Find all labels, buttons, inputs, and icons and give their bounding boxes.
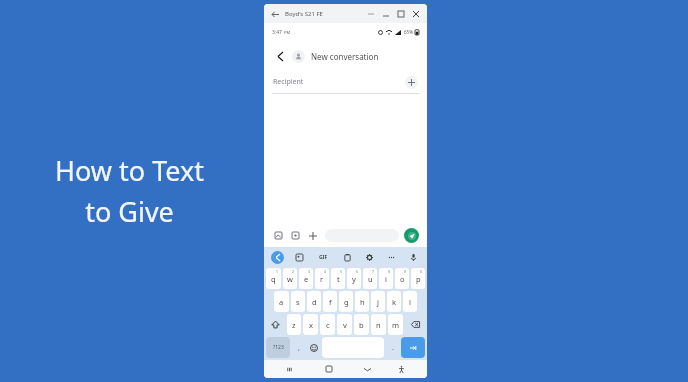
staticText: 3:47 <box>272 29 282 36</box>
button[interactable]: Back <box>272 48 288 64</box>
button[interactable]: Gallery <box>272 229 285 242</box>
button[interactable]: p <box>411 268 425 289</box>
button[interactable]: i <box>379 268 393 289</box>
button[interactable]: Sticker <box>293 251 306 264</box>
staticText: c <box>326 320 330 330</box>
button[interactable]: More options <box>385 251 398 264</box>
button[interactable]: . <box>386 337 399 358</box>
button[interactable]: t <box>331 268 345 289</box>
button[interactable]: Shift <box>266 314 285 335</box>
staticText: w <box>287 274 293 284</box>
staticText: 7 <box>372 269 375 274</box>
button[interactable]: j <box>371 291 385 312</box>
staticText: i <box>385 274 387 284</box>
button[interactable]: Recipient <box>273 71 418 93</box>
button[interactable]: f <box>323 291 337 312</box>
button[interactable]: r <box>315 268 329 289</box>
staticText: 4 <box>324 269 327 274</box>
button[interactable]: Home <box>317 360 340 378</box>
button[interactable]: More <box>365 8 377 20</box>
button[interactable]: e <box>299 268 313 289</box>
staticText: ?123 <box>273 344 284 351</box>
button[interactable]: Clipboard <box>341 251 354 264</box>
button[interactable]: , <box>292 337 305 358</box>
button[interactable]: u <box>363 268 377 289</box>
staticText: 65% <box>404 29 413 35</box>
button[interactable]: Recents <box>278 360 301 378</box>
staticText: l <box>409 297 411 307</box>
staticText: e <box>304 274 309 284</box>
button[interactable]: a <box>274 291 289 312</box>
button[interactable]: Settings <box>363 251 376 264</box>
button[interactable]: g <box>339 291 353 312</box>
staticText: n <box>376 320 381 330</box>
staticText: How to Text <box>55 152 204 189</box>
button[interactable]: Close <box>410 8 422 20</box>
button[interactable]: z <box>287 314 301 335</box>
button[interactable]: Minimize <box>380 8 392 20</box>
button[interactable]: w <box>283 268 297 289</box>
button[interactable]: y <box>347 268 361 289</box>
button[interactable]: l <box>403 291 417 312</box>
staticText: a <box>279 297 284 307</box>
staticText: PM <box>284 30 291 35</box>
button[interactable]: c <box>320 314 335 335</box>
staticText: t <box>337 274 340 284</box>
button[interactable]: n <box>371 314 386 335</box>
button[interactable]: ?123 <box>266 337 290 358</box>
button[interactable]: Add attachment <box>306 229 319 242</box>
staticText: x <box>309 320 313 330</box>
staticText: 5 <box>340 269 343 274</box>
staticText: f <box>329 297 332 307</box>
staticText: k <box>392 297 397 307</box>
button[interactable]: h <box>355 291 369 312</box>
button[interactable]: Maximize <box>395 8 407 20</box>
button[interactable]: Voice input <box>407 251 420 264</box>
button[interactable]: Accessibility <box>390 360 413 378</box>
staticText: j <box>377 297 379 307</box>
staticText: d <box>312 297 317 307</box>
staticText: p <box>416 274 421 284</box>
button[interactable]: b <box>354 314 369 335</box>
staticText: z <box>292 320 296 330</box>
staticText: 3 <box>308 269 311 274</box>
staticText: GIF <box>319 254 328 261</box>
staticText: r <box>320 274 324 284</box>
button[interactable]: m <box>388 314 403 335</box>
staticText: h <box>360 297 365 307</box>
staticText: y <box>352 274 356 284</box>
staticText: o <box>400 274 405 284</box>
button[interactable]: q <box>266 268 281 289</box>
staticText: 0 <box>420 269 423 274</box>
button[interactable]: Enter <box>401 337 425 358</box>
button[interactable]: Expand toolbar <box>271 251 284 264</box>
button[interactable]: Send <box>404 228 419 243</box>
button[interactable]: o <box>395 268 409 289</box>
staticText: u <box>368 274 373 284</box>
staticText: s <box>296 297 300 307</box>
button[interactable]: Stickers <box>289 229 302 242</box>
staticText: Boyd's S21 FE <box>285 10 323 18</box>
staticText: g <box>344 297 349 307</box>
button[interactable]: Emoji <box>307 337 320 358</box>
button[interactable]: Contact <box>292 50 305 63</box>
button[interactable]: x <box>303 314 318 335</box>
button[interactable]: Backspace <box>405 314 425 335</box>
button[interactable]: GIF <box>315 251 331 264</box>
staticText: 9 <box>404 269 407 274</box>
button[interactable]: k <box>387 291 401 312</box>
staticText: 2 <box>292 269 295 274</box>
staticText: b <box>359 320 364 330</box>
button[interactable]: d <box>307 291 321 312</box>
staticText: m <box>392 320 400 330</box>
staticText: q <box>271 274 276 284</box>
button[interactable]: s <box>291 291 305 312</box>
button[interactable]: Hide keyboard <box>356 360 379 378</box>
button[interactable]: Back <box>269 8 281 20</box>
staticText: 8 <box>388 269 391 274</box>
button[interactable]: Add recipient <box>405 76 418 89</box>
staticText: New conversation <box>311 51 379 62</box>
button[interactable]: v <box>337 314 352 335</box>
button[interactable]: Space <box>322 337 384 358</box>
